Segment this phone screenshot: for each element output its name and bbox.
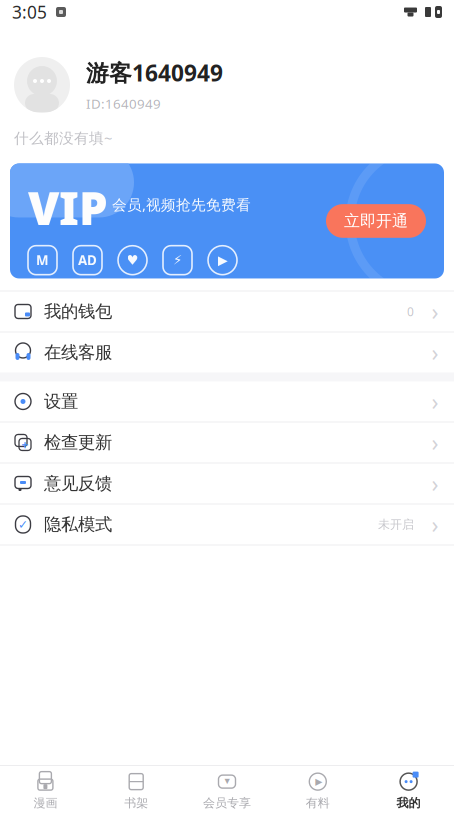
staticText: 游客1640949 [86, 58, 223, 88]
staticText: 设置 [44, 391, 78, 412]
staticText: › [431, 427, 438, 457]
staticText: 立即开通 [344, 211, 408, 231]
staticText: › [431, 337, 438, 367]
staticText: › [431, 386, 438, 416]
button[interactable]: ✓ [0, 504, 454, 544]
button[interactable]: 书架 [91, 766, 182, 815]
staticText: 我的钱包 [44, 301, 112, 322]
staticText: 0 [407, 303, 414, 319]
staticText: 有料 [306, 796, 330, 810]
staticText: ✓ [18, 518, 28, 531]
staticText: + [21, 436, 28, 452]
button[interactable]: ▶ [272, 766, 363, 815]
staticText: 书架 [124, 796, 148, 810]
staticText: ⚡︎ [173, 253, 182, 268]
staticText: 3:05 [12, 0, 47, 23]
staticText: › [431, 296, 438, 326]
staticText: ▾ [224, 775, 229, 787]
button[interactable]: 我的钱包 [0, 291, 454, 331]
staticText: ID:1640949 [86, 95, 161, 112]
staticText: 什么都没有填~ [14, 128, 112, 147]
staticText: ▶ [217, 253, 227, 268]
staticText: › [431, 468, 438, 498]
staticText: ▶ [315, 776, 322, 787]
staticText: 意见反馈 [44, 473, 112, 494]
staticText: 在线客服 [44, 342, 112, 363]
staticText: M [36, 251, 49, 269]
staticText: 检查更新 [44, 432, 112, 453]
button[interactable]: + [0, 422, 454, 462]
staticText: 我的 [397, 796, 421, 810]
staticText: AD [78, 251, 97, 269]
button[interactable]: 游客1640949 [0, 57, 454, 113]
button[interactable]: 在线客服 [0, 332, 454, 372]
button[interactable]: ▾ [182, 766, 272, 815]
staticText: 会员,视频抢先免费看 [112, 195, 251, 214]
button[interactable]: VIP [0, 163, 454, 278]
staticText: 漫画 [33, 796, 57, 810]
button[interactable]: 设置 [0, 381, 454, 421]
staticText: › [431, 509, 438, 539]
button[interactable]: 我的 [363, 766, 454, 815]
staticText: VIP [28, 177, 108, 238]
button[interactable]: 意见反馈 [0, 463, 454, 503]
staticText: 会员专享 [203, 796, 251, 810]
button[interactable]: 漫画 [0, 766, 91, 815]
staticText: 未开启 [378, 517, 414, 532]
staticText: 隐私模式 [44, 514, 112, 535]
staticText: ♥ [126, 253, 138, 268]
